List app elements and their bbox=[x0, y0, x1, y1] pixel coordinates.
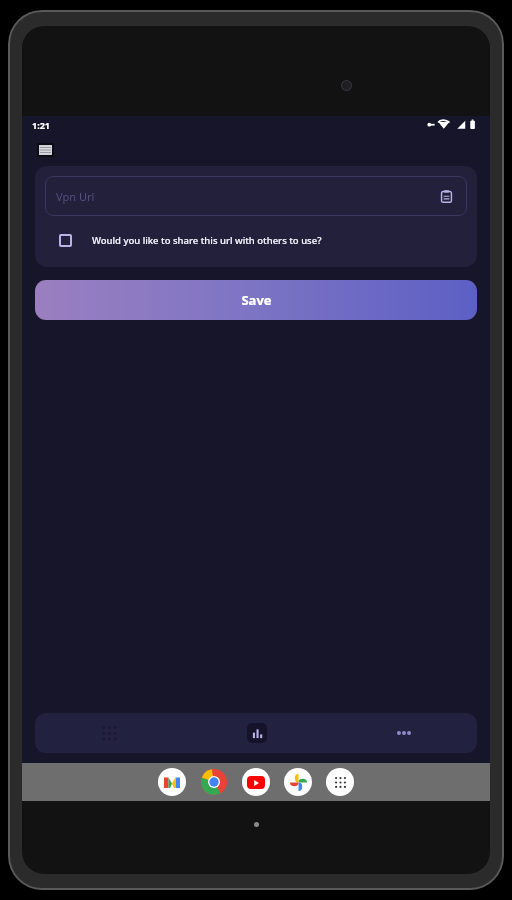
button[interactable]: Stats bbox=[183, 713, 330, 753]
button[interactable]: Paste from clipboard bbox=[436, 186, 456, 206]
staticText: Would you like to share this url with ot… bbox=[92, 234, 322, 247]
button[interactable]: Gmail bbox=[158, 768, 186, 796]
button[interactable]: Save bbox=[35, 280, 477, 320]
staticText: Save bbox=[241, 291, 272, 309]
button[interactable]: YouTube bbox=[242, 768, 270, 796]
button[interactable]: More bbox=[330, 713, 477, 753]
button[interactable]: All apps bbox=[326, 768, 354, 796]
button[interactable]: Menu bbox=[35, 140, 55, 160]
button[interactable]: Chrome bbox=[200, 768, 228, 796]
button[interactable]: Photos bbox=[284, 768, 312, 796]
button[interactable]: Vpn Url bbox=[45, 176, 467, 216]
button[interactable]: Would you like to share this url with ot… bbox=[45, 230, 467, 251]
staticText: 1:21 bbox=[32, 119, 50, 131]
staticText: Vpn Url bbox=[56, 189, 436, 204]
